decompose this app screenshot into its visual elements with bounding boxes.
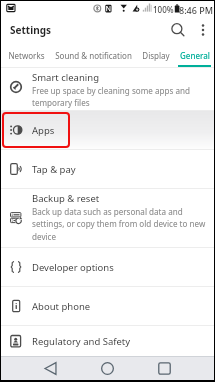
button[interactable]: Backup & reset	[1, 189, 214, 247]
button[interactable]: Regulatory and Safety	[1, 326, 214, 356]
button[interactable]: Back	[22, 357, 79, 380]
staticText: Settings	[10, 23, 51, 37]
staticText: Regulatory and Safety	[32, 335, 131, 348]
button[interactable]: Smart cleaning	[1, 68, 214, 110]
button[interactable]: General	[175, 44, 214, 67]
staticText: About phone	[32, 300, 91, 313]
staticText: Networks	[8, 50, 45, 61]
staticText: Back up data such as personal data and s…	[32, 206, 209, 243]
staticText: 100%	[153, 4, 174, 15]
button[interactable]: Recents	[136, 357, 193, 380]
staticText: 8:46 PM	[179, 4, 213, 16]
button[interactable]: Tap & pay	[1, 150, 214, 188]
staticText: Backup & reset	[32, 192, 100, 205]
staticText: Tap & pay	[32, 163, 76, 176]
button[interactable]: About phone	[1, 287, 214, 325]
staticText: General	[180, 50, 210, 61]
staticText: Developer options	[32, 261, 114, 274]
button[interactable]: Display	[136, 44, 175, 67]
button[interactable]: Developer options	[1, 248, 214, 286]
staticText: Apps	[32, 124, 55, 137]
button[interactable]: Apps	[1, 111, 214, 149]
button[interactable]: Search	[164, 16, 192, 44]
button[interactable]: Networks	[3, 44, 50, 67]
staticText: Sound & notification	[55, 50, 132, 61]
staticText: Smart cleaning	[32, 71, 99, 84]
staticText: Free up space by cleaning some apps and …	[32, 85, 209, 109]
button[interactable]: Sound & notification	[50, 44, 136, 67]
button[interactable]: More options	[192, 16, 214, 44]
button[interactable]: Home	[79, 357, 136, 380]
staticText: Display	[142, 50, 170, 61]
